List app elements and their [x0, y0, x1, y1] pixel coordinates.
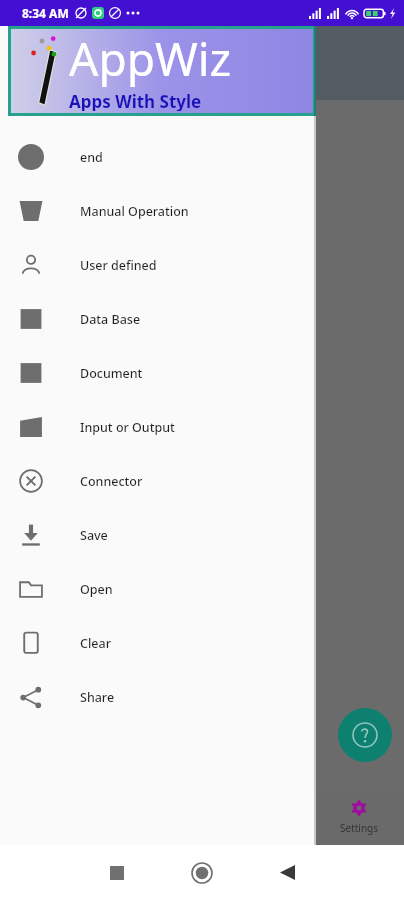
- staticText: end: [80, 149, 103, 166]
- button[interactable]: Input or Output: [0, 400, 316, 454]
- button[interactable]: Clear: [0, 616, 316, 670]
- staticText: Apps With Style: [69, 90, 202, 111]
- button[interactable]: end: [0, 130, 316, 184]
- staticText: Input or Output: [80, 419, 175, 436]
- button[interactable]: User defined: [0, 238, 316, 292]
- staticText: Manual Operation: [80, 203, 189, 220]
- button[interactable]: Open: [0, 562, 316, 616]
- staticText: Clear: [80, 635, 111, 652]
- button[interactable]: Document: [0, 346, 316, 400]
- staticText: User defined: [80, 257, 157, 274]
- button[interactable]: Data Base: [0, 292, 316, 346]
- staticText: Open: [80, 581, 113, 598]
- button[interactable]: Connector: [0, 454, 316, 508]
- button[interactable]: Home: [192, 863, 212, 883]
- staticText: Data Base: [80, 311, 141, 328]
- button[interactable]: Manual Operation: [0, 184, 316, 238]
- button[interactable]: Back: [280, 865, 295, 880]
- staticText: Share: [80, 689, 115, 706]
- button[interactable]: Save: [0, 508, 316, 562]
- staticText: AppWiz: [69, 27, 232, 90]
- button[interactable]: Settings: [314, 793, 404, 841]
- button[interactable]: Share: [0, 670, 316, 724]
- staticText: Document: [80, 365, 143, 382]
- staticText: Settings: [340, 821, 379, 835]
- staticText: Save: [80, 527, 108, 544]
- button[interactable]: Help: [338, 708, 392, 762]
- button[interactable]: AppWiz: [11, 29, 313, 113]
- staticText: 8:34 AM: [22, 5, 69, 21]
- staticText: Connector: [80, 473, 143, 490]
